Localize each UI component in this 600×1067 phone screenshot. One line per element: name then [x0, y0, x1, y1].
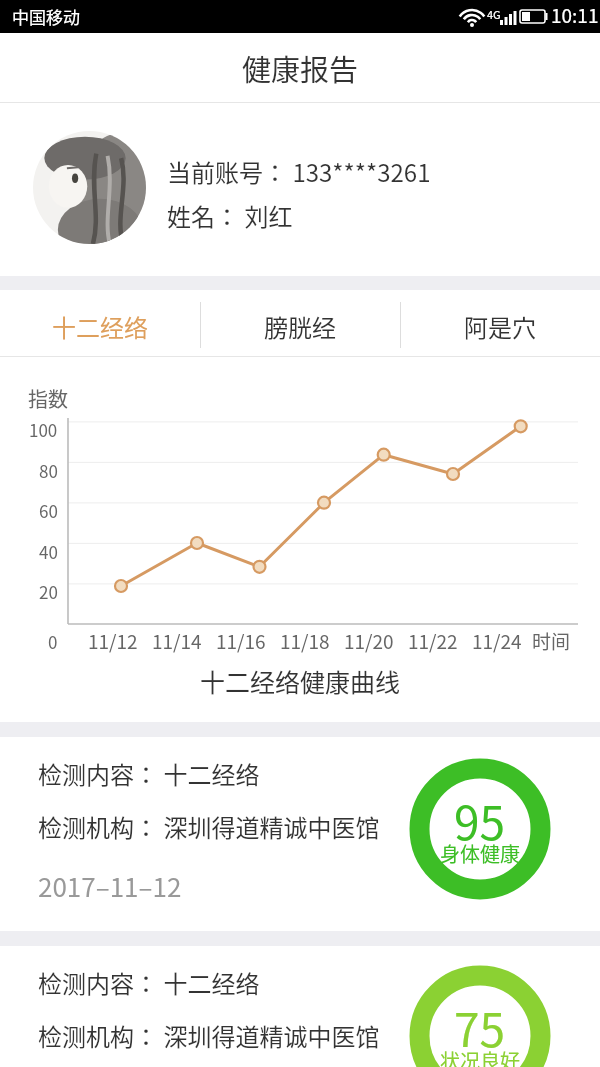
staticText: 20 — [39, 579, 58, 604]
staticText: 健康报告 — [242, 47, 359, 89]
staticText: 时间 — [532, 627, 571, 655]
staticText: 11/16 — [216, 627, 266, 655]
staticText: 11/20 — [344, 627, 394, 655]
staticText: 指数 — [28, 384, 68, 413]
staticText: 11/22 — [408, 627, 458, 655]
staticText: 95 — [454, 787, 506, 854]
staticText: 中国移动 — [12, 4, 80, 29]
staticText: 膀胱经 — [264, 309, 336, 344]
staticText: 100 — [29, 417, 58, 442]
staticText: 十二经络 — [52, 309, 148, 344]
staticText: 状况良好 — [440, 1046, 520, 1067]
staticText: 11/12 — [88, 627, 138, 655]
staticText: 2017–11–12 — [38, 867, 182, 905]
button[interactable]: 检测内容： 十二经络 — [0, 946, 600, 1067]
button[interactable]: 检测内容： 十二经络 — [0, 737, 600, 931]
staticText: 80 — [39, 458, 58, 483]
staticText: 0 — [48, 629, 58, 654]
staticText: 当前账号： 133****3261 — [167, 154, 431, 189]
staticText: 40 — [39, 539, 58, 564]
staticText: 检测内容： 十二经络 — [38, 756, 260, 791]
button[interactable]: 当前账号： 133****3261 — [0, 103, 600, 276]
staticText: 阿是穴 — [464, 309, 536, 344]
staticText: 检测机构： 深圳得道精诚中医馆 — [38, 809, 380, 844]
staticText: 姓名： 刘红 — [167, 198, 293, 233]
button[interactable]: 十二经络 — [0, 290, 200, 357]
staticText: 10:11 — [551, 1, 599, 29]
staticText: 检测内容： 十二经络 — [38, 965, 260, 1000]
staticText: 十二经络健康曲线 — [200, 663, 401, 699]
staticText: 75 — [454, 994, 506, 1061]
staticText: 60 — [39, 498, 58, 523]
staticText: 身体健康 — [440, 839, 520, 868]
staticText: 检测机构： 深圳得道精诚中医馆 — [38, 1018, 380, 1053]
button[interactable]: 阿是穴 — [400, 290, 600, 357]
staticText: 11/18 — [280, 627, 330, 655]
button[interactable]: 膀胱经 — [200, 290, 400, 357]
staticText: 11/14 — [152, 627, 202, 655]
staticText: 11/24 — [472, 627, 522, 655]
staticText: 4G — [487, 6, 501, 22]
